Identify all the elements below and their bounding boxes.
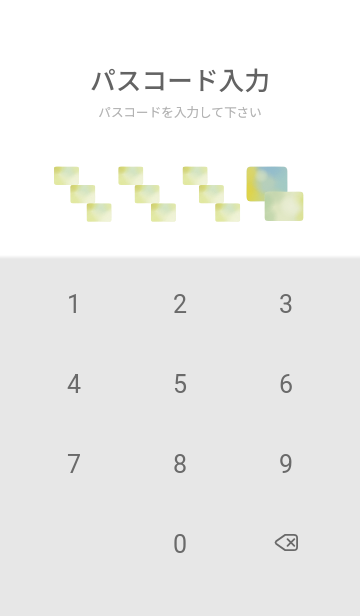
button[interactable]: 1 [26, 267, 122, 341]
button[interactable]: 6 [238, 347, 334, 421]
staticText: 4 [67, 370, 82, 399]
staticText: パスコードを入力して下さい [98, 102, 262, 120]
button[interactable]: 2 [132, 267, 228, 341]
button[interactable]: 9 [238, 427, 334, 501]
staticText: 0 [173, 530, 188, 559]
button[interactable]: Backspace [238, 507, 334, 581]
staticText: 3 [279, 290, 294, 319]
staticText: 2 [173, 290, 188, 319]
staticText: 6 [279, 370, 294, 399]
staticText: 8 [173, 450, 188, 479]
button[interactable]: 5 [132, 347, 228, 421]
staticText: 1 [67, 290, 82, 319]
button[interactable]: 0 [132, 507, 228, 581]
button[interactable]: 3 [238, 267, 334, 341]
staticText: 9 [279, 450, 294, 479]
button[interactable]: 7 [26, 427, 122, 501]
button[interactable]: 4 [26, 347, 122, 421]
staticText: 5 [173, 370, 188, 399]
staticText: パスコード入力 [90, 60, 270, 97]
staticText: 7 [67, 450, 82, 479]
button[interactable]: 8 [132, 427, 228, 501]
